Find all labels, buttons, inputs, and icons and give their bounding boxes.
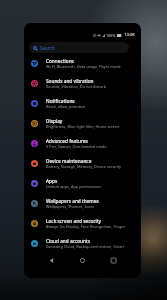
staticText: Wallpapers, Themes, Icons bbox=[46, 204, 95, 209]
button[interactable]: Display bbox=[24, 113, 141, 133]
button[interactable]: Home bbox=[67, 253, 98, 267]
button[interactable]: Cloud and accounts bbox=[24, 233, 141, 253]
button[interactable]: Connections bbox=[24, 53, 141, 73]
staticText: Apps bbox=[46, 178, 58, 184]
staticText: Wi-Fi, Bluetooth, Data usage, Flight mod… bbox=[46, 64, 121, 69]
staticText: Samsung Cloud, Backup and restore, Smart bbox=[46, 244, 125, 249]
staticText: Notifications bbox=[46, 98, 75, 104]
button[interactable]: Device maintenance bbox=[24, 153, 141, 173]
button[interactable]: Sounds and vibration bbox=[24, 73, 141, 93]
button[interactable]: Apps bbox=[24, 173, 141, 193]
button[interactable]: Recent apps bbox=[98, 253, 129, 267]
staticText: Brightness, Blue light filter, Home scre… bbox=[46, 124, 120, 129]
staticText: 100% bbox=[106, 33, 116, 38]
staticText: S Pen, Games, One-handed mode bbox=[46, 144, 107, 149]
staticText: Block, allow, prioritize bbox=[46, 104, 86, 109]
staticText: Connections bbox=[46, 58, 74, 64]
button[interactable]: Search bbox=[29, 42, 129, 53]
staticText: Wallpapers and themes bbox=[46, 198, 99, 204]
staticText: Always On Display, Face Recognition, Fin… bbox=[46, 224, 126, 229]
staticText: Battery, Storage, Memory, Device securit… bbox=[46, 164, 122, 169]
staticText: Search bbox=[40, 45, 55, 51]
button[interactable]: Lock screen and security bbox=[24, 213, 141, 233]
button[interactable]: Notifications bbox=[24, 93, 141, 113]
staticText: Lock screen and security bbox=[46, 218, 101, 224]
button[interactable]: Wallpapers and themes bbox=[24, 193, 141, 213]
staticText: Device maintenance bbox=[46, 158, 92, 164]
button[interactable]: Advanced features bbox=[24, 133, 141, 153]
staticText: 14:08 bbox=[124, 32, 135, 38]
staticText: Cloud and accounts bbox=[46, 238, 91, 244]
staticText: Sounds and vibration bbox=[46, 78, 94, 84]
staticText: Default apps, App permissions bbox=[46, 184, 102, 189]
staticText: Sounds, Vibration, Do not disturb bbox=[46, 84, 106, 89]
staticText: Display bbox=[46, 118, 63, 124]
button[interactable]: Back bbox=[36, 253, 67, 267]
staticText: Advanced features bbox=[46, 138, 88, 144]
